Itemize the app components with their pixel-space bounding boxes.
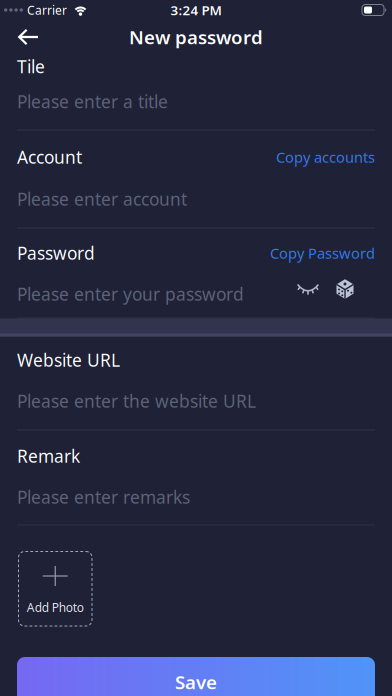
staticText: 3:24 PM — [170, 1, 221, 19]
staticText: Add Photo — [27, 599, 84, 615]
staticText: Please enter your password — [17, 282, 244, 305]
staticText: Carrier — [27, 2, 67, 18]
staticText: Website URL — [17, 348, 120, 371]
staticText: Account — [17, 145, 82, 168]
button[interactable]: Add Photo — [18, 551, 92, 626]
staticText: Please enter remarks — [17, 485, 190, 508]
button[interactable]: Generate random password — [336, 279, 354, 299]
button[interactable]: Back — [0, 29, 47, 45]
button[interactable]: Show password — [297, 279, 319, 296]
staticText: Remark — [17, 444, 80, 467]
staticText: Tile — [17, 55, 45, 78]
staticText: New password — [129, 25, 263, 49]
staticText: Save — [175, 670, 217, 694]
staticText: Copy accounts — [276, 147, 375, 167]
button[interactable]: Save — [17, 657, 375, 696]
staticText: Copy Password — [270, 243, 375, 263]
button[interactable]: Copy accounts — [276, 147, 375, 167]
staticText: Please enter the website URL — [17, 389, 256, 412]
staticText: Password — [17, 241, 95, 264]
button[interactable]: Copy Password — [270, 243, 375, 263]
staticText: Please enter a title — [17, 90, 168, 113]
staticText: Please enter account — [17, 187, 187, 210]
